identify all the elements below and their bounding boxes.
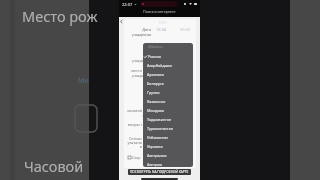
button[interactable]: Армения	[143, 70, 193, 79]
staticText: место	[131, 68, 142, 73]
staticText: Беларусь	[147, 81, 164, 86]
button[interactable]: Сохр	[128, 155, 141, 160]
staticText: Казахстан	[147, 99, 166, 104]
button[interactable]: Notification	[140, 1, 177, 7]
button[interactable]: Таджикистан	[143, 115, 193, 124]
staticText: часовой	[126, 108, 142, 113]
staticText: 00:00	[180, 27, 191, 32]
button[interactable]: Казахстан	[143, 97, 193, 106]
staticText: Узбекистан	[147, 135, 168, 140]
staticText: Таджикистан	[147, 117, 172, 122]
staticText: Азербайджан	[147, 63, 172, 68]
staticText: Австрия	[147, 162, 163, 167]
staticText: в	[139, 144, 142, 149]
button[interactable]: Россия	[143, 52, 193, 61]
staticText: рождения	[132, 32, 151, 37]
staticText: указано	[127, 140, 142, 145]
other: Back	[120, 20, 123, 23]
staticText: Часовой	[24, 156, 84, 176]
staticText: рождения	[132, 58, 151, 63]
staticText: 22:07	[122, 2, 133, 7]
staticText: Дата	[142, 27, 151, 32]
staticText: Абхазия	[148, 44, 163, 49]
button[interactable]: Грузия	[143, 88, 193, 97]
button[interactable]: Австралия	[143, 151, 193, 160]
staticText: Россия	[148, 54, 161, 59]
button[interactable]: Туркменистан	[143, 124, 193, 133]
staticText: Украина	[147, 144, 163, 149]
button[interactable]: Молдова	[143, 106, 193, 115]
button[interactable]: Азербайджан	[143, 61, 193, 70]
staticText: Армения	[147, 72, 164, 77]
staticText: 1974	[158, 20, 168, 25]
staticText: Сохр	[132, 155, 141, 160]
button[interactable]: Австрия	[143, 160, 193, 167]
button[interactable]: Узбекистан	[143, 133, 193, 142]
staticText: Место рож	[22, 6, 98, 26]
button[interactable]: ПОСМОТРЕТЬ НА ПОДРОБНОЙ КАРТЕ	[128, 169, 191, 175]
button[interactable]: Украина	[143, 142, 193, 151]
staticText: Молдова	[147, 108, 164, 113]
staticText: ПОСМОТРЕТЬ НА ПОДРОБНОЙ КАРТЕ	[130, 170, 189, 174]
staticText: Туркменистан	[147, 126, 174, 131]
staticText: возраст	[127, 122, 142, 127]
staticText: Сейчас	[128, 136, 142, 141]
staticText: Поиск в интернете	[143, 9, 176, 14]
staticText: Ме	[78, 75, 89, 85]
staticText: Грузия	[147, 90, 160, 95]
staticText: 12.04	[156, 27, 167, 32]
button[interactable]: Беларусь	[143, 79, 193, 88]
staticText: рождения	[132, 73, 151, 78]
staticText: Австралия	[147, 153, 167, 158]
staticText: пояс	[142, 113, 151, 118]
